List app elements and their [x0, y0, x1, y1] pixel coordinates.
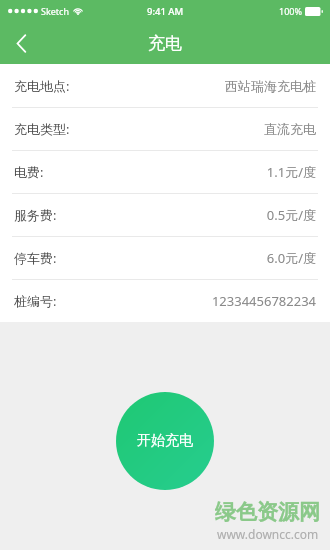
button[interactable]: 充电类型:	[0, 108, 330, 150]
button[interactable]: Back	[0, 22, 42, 64]
staticText: 0.5元/度	[266, 206, 316, 224]
staticText: 100%	[279, 5, 302, 17]
staticText: 服务费:	[14, 206, 57, 224]
staticText: 12334456782234	[211, 292, 316, 310]
staticText: 充电	[148, 33, 182, 54]
button[interactable]: 电费:	[0, 151, 330, 193]
button[interactable]: 桩编号:	[0, 280, 330, 322]
button[interactable]: 停车费:	[0, 237, 330, 279]
staticText: 停车费:	[14, 249, 57, 267]
staticText: www.downcc.com	[217, 526, 319, 542]
staticText: 9:41 AM	[147, 5, 184, 18]
staticText: 西站瑞海充电桩	[225, 78, 316, 94]
staticText: 开始充电	[137, 432, 193, 450]
staticText: 绿色资源网	[215, 499, 320, 525]
button[interactable]: 服务费:	[0, 194, 330, 236]
staticText: 电费:	[14, 163, 44, 181]
staticText: 1.1元/度	[266, 163, 316, 181]
button[interactable]: 充电地点:	[0, 64, 330, 107]
staticText: 直流充电	[264, 121, 316, 137]
staticText: 充电类型:	[14, 120, 70, 138]
staticText: 6.0元/度	[266, 249, 316, 267]
button[interactable]: 开始充电	[116, 392, 214, 490]
staticText: Sketch	[41, 5, 69, 17]
staticText: 充电地点:	[14, 77, 70, 95]
staticText: 桩编号:	[14, 292, 57, 310]
